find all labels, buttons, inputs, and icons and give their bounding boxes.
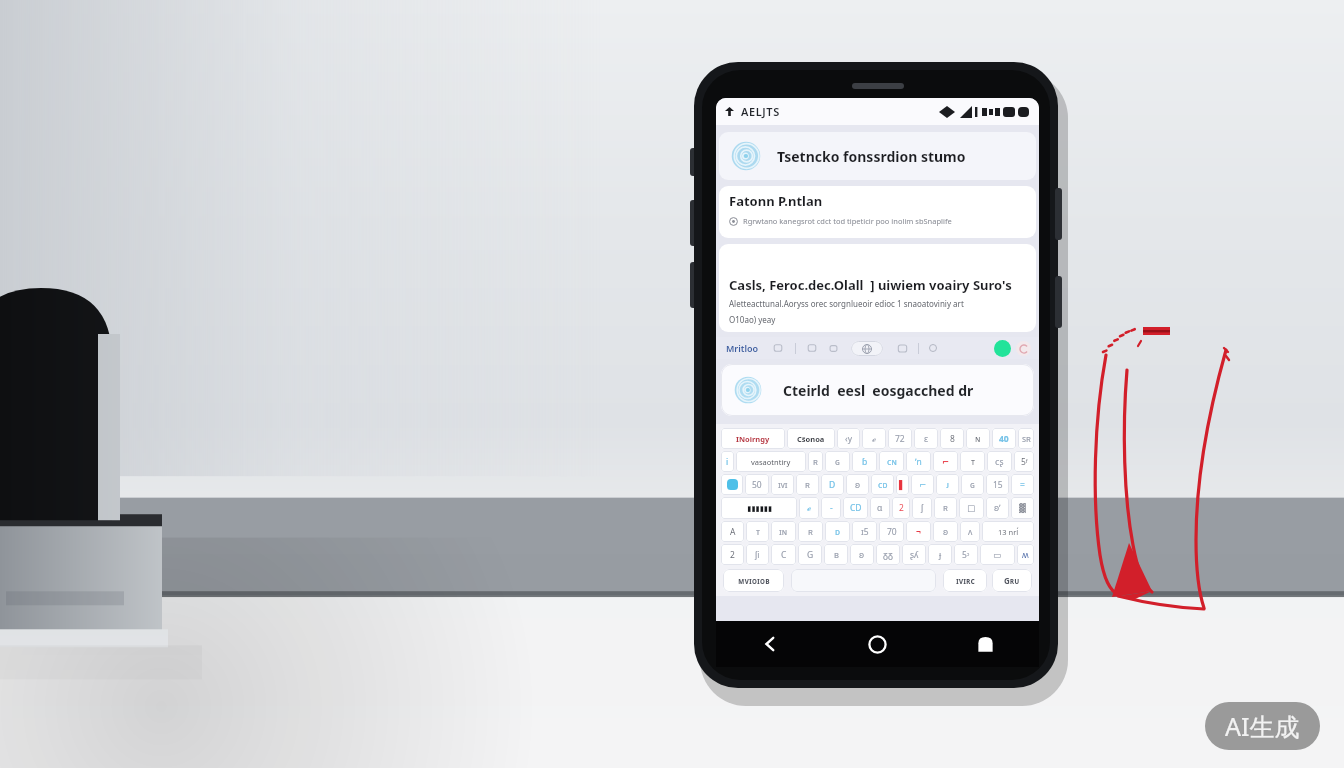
button[interactable]: A	[721, 521, 744, 542]
button[interactable]: т	[960, 451, 985, 472]
button[interactable]: =	[1011, 474, 1034, 495]
staticText: ‹y	[845, 433, 852, 445]
button[interactable]: 15	[986, 474, 1009, 495]
button[interactable]: Fatonn P.ntlan	[719, 186, 1036, 238]
staticText: ɓ	[862, 456, 868, 468]
button[interactable]: 8	[940, 428, 964, 449]
button[interactable]: ʙ	[824, 544, 848, 565]
staticText: ɪ5	[861, 526, 869, 538]
button[interactable]: ⌐	[911, 474, 934, 495]
staticText: 70	[887, 526, 897, 538]
button[interactable]: 5ᶠ	[1014, 451, 1034, 472]
button[interactable]: 40	[992, 428, 1016, 449]
button[interactable]: ɪ5	[852, 521, 877, 542]
button[interactable]: ▮▮▮▮▮▮	[721, 497, 797, 519]
button[interactable]: ɪᴠɪʀᴄ	[943, 569, 987, 592]
button[interactable]: ʃ	[912, 497, 932, 519]
button[interactable]: ᴛ	[746, 521, 769, 542]
staticText: =	[1020, 479, 1025, 491]
button[interactable]: ʀ	[808, 451, 823, 472]
button[interactable]: ▓	[1011, 497, 1034, 519]
button[interactable]: ʌ	[960, 521, 980, 542]
button[interactable]: Home	[823, 621, 931, 667]
staticText: 5ᵓ	[962, 549, 970, 561]
button[interactable]: □	[959, 497, 984, 519]
button[interactable]: ▌	[896, 474, 909, 495]
button[interactable]: ℯ	[862, 428, 886, 449]
button[interactable]: Recents	[931, 621, 1039, 667]
button[interactable]: 13 nrĺ	[982, 521, 1034, 542]
button[interactable]: ʚ	[846, 474, 869, 495]
button[interactable]: ʚ	[850, 544, 874, 565]
button[interactable]: ʂʎ	[902, 544, 926, 565]
button[interactable]: ¬	[906, 521, 931, 542]
button[interactable]: ɟ	[928, 544, 952, 565]
staticText: ʀ	[805, 479, 810, 491]
button[interactable]: ɪɴ	[771, 521, 796, 542]
button[interactable]: ᵹᵹ	[876, 544, 900, 565]
staticText: G	[807, 549, 814, 561]
button[interactable]: C	[771, 544, 796, 565]
button[interactable]: ʚʼ	[986, 497, 1009, 519]
staticText: ⌐	[942, 457, 950, 467]
button[interactable]: More	[1016, 341, 1031, 356]
button[interactable]: 2	[721, 544, 744, 565]
button[interactable]: G	[798, 544, 822, 565]
button[interactable]: CD	[843, 497, 868, 519]
button[interactable]: Back	[716, 621, 823, 667]
button[interactable]: ℯ	[799, 497, 819, 519]
button[interactable]: ▭	[980, 544, 1015, 565]
button[interactable]: Fingerprint	[721, 364, 1034, 416]
button[interactable]: ʀ	[798, 521, 823, 542]
button[interactable]: Fingerprint	[719, 132, 1036, 180]
button[interactable]: 2	[892, 497, 910, 519]
staticText: ɢ	[835, 456, 840, 468]
button[interactable]	[721, 474, 743, 495]
staticText: Aletteacttunal.Aoryss orec sorgnlueoir e…	[729, 298, 964, 309]
button[interactable]: Cšonoa	[787, 428, 835, 449]
button[interactable]: -	[821, 497, 841, 519]
button[interactable]: ᴊ	[936, 474, 959, 495]
button[interactable]: ᴍᴠɪᴏɪᴏʙ	[723, 569, 784, 592]
button[interactable]: Casls, Feroc.dec.Olall ] uiwiem voairy S…	[719, 244, 1036, 332]
button[interactable]: ‹y	[837, 428, 860, 449]
button[interactable]: ʃi	[746, 544, 769, 565]
button[interactable]: ᴄᴅ	[871, 474, 894, 495]
staticText: ʌ	[968, 526, 973, 538]
button[interactable]: ᴄɴ	[879, 451, 904, 472]
staticText: 2	[730, 549, 735, 561]
button[interactable]: 5ᵓ	[954, 544, 978, 565]
button[interactable]: 70	[879, 521, 904, 542]
button[interactable]: ʀ	[934, 497, 957, 519]
button[interactable]: Globe	[851, 341, 883, 356]
button[interactable]: ʀ	[796, 474, 819, 495]
button[interactable]: ᴄʂ	[987, 451, 1012, 472]
staticText: D	[829, 479, 836, 491]
button[interactable]: Space	[791, 569, 936, 592]
button[interactable]: ɢ	[825, 451, 850, 472]
button[interactable]: Gʀᴜ	[992, 569, 1032, 592]
button[interactable]: 50	[745, 474, 769, 495]
staticText: ɪᴠɪ	[778, 479, 788, 491]
button[interactable]: D	[821, 474, 844, 495]
button[interactable]: ʼn	[906, 451, 931, 472]
button[interactable]: Send	[994, 340, 1011, 357]
button[interactable]: sʀ	[1018, 428, 1034, 449]
button[interactable]: INoirngy	[721, 428, 785, 449]
button[interactable]: ɪᴠɪ	[771, 474, 794, 495]
button[interactable]: ʍ	[1017, 544, 1034, 565]
button[interactable]: i	[721, 451, 734, 472]
staticText: ʂʎ	[910, 549, 919, 561]
button[interactable]: vasaotntiry	[736, 451, 806, 472]
button[interactable]: ɢ	[961, 474, 984, 495]
button[interactable]: ᴅ	[825, 521, 850, 542]
button[interactable]: 72	[888, 428, 912, 449]
staticText: ɛ	[924, 433, 929, 445]
button[interactable]: ɛ	[914, 428, 938, 449]
other: Fingerprint	[731, 141, 761, 171]
button[interactable]: ⌐	[933, 451, 958, 472]
button[interactable]: ɴ	[966, 428, 990, 449]
button[interactable]: ʚ	[933, 521, 958, 542]
button[interactable]: ɑ	[870, 497, 890, 519]
button[interactable]: ɓ	[852, 451, 877, 472]
